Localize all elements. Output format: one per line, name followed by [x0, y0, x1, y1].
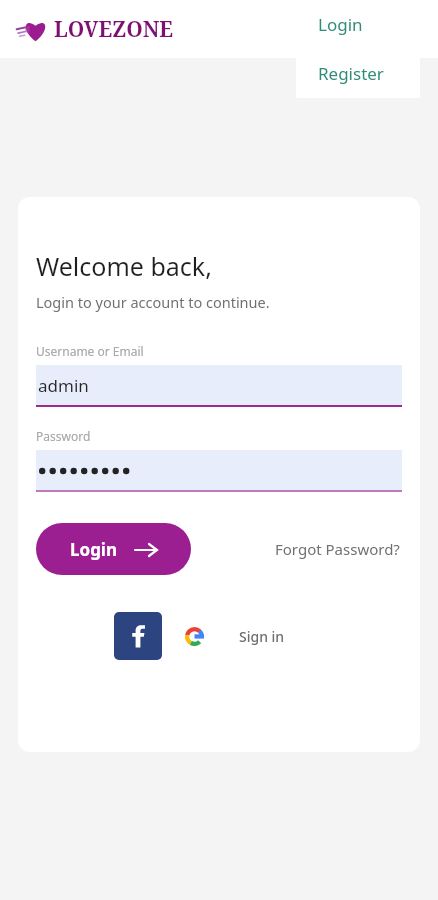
- staticText: Login: [318, 13, 363, 36]
- staticText: LOVEZONE: [54, 15, 174, 44]
- staticText: Password: [36, 428, 91, 444]
- staticText: admin: [38, 374, 89, 397]
- button[interactable]: admin: [36, 365, 402, 405]
- staticText: Welcome back,: [36, 249, 212, 283]
- staticText: Login: [70, 538, 118, 561]
- button[interactable]: Sign in: [174, 618, 318, 654]
- button[interactable]: Register: [296, 49, 420, 98]
- staticText: Login to your account to continue.: [36, 292, 270, 312]
- button[interactable]: Forgot Password?: [273, 533, 402, 565]
- button[interactable]: Login: [36, 523, 191, 575]
- staticText: Register: [318, 62, 384, 85]
- button[interactable]: Login: [296, 0, 420, 49]
- button[interactable]: [36, 450, 402, 490]
- staticText: Username or Email: [36, 343, 144, 359]
- button[interactable]: LOVEZONE: [16, 15, 174, 44]
- staticText: Forgot Password?: [275, 539, 400, 559]
- button[interactable]: Sign in with Facebook: [114, 612, 162, 660]
- staticText: Sign in: [239, 627, 285, 646]
